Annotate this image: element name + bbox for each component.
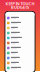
button[interactable] <box>5 50 35 55</box>
button[interactable] <box>5 55 35 60</box>
button[interactable] <box>5 40 35 45</box>
button[interactable] <box>5 35 35 40</box>
button[interactable] <box>5 15 35 20</box>
staticText: KEEP IN TOUCH <box>5 1 34 6</box>
button[interactable] <box>5 65 35 70</box>
button[interactable] <box>5 20 35 25</box>
button[interactable] <box>5 60 35 65</box>
button[interactable] <box>5 45 35 50</box>
button[interactable] <box>5 25 35 30</box>
button[interactable] <box>5 30 35 35</box>
staticText: BUDGETS <box>11 4 29 10</box>
